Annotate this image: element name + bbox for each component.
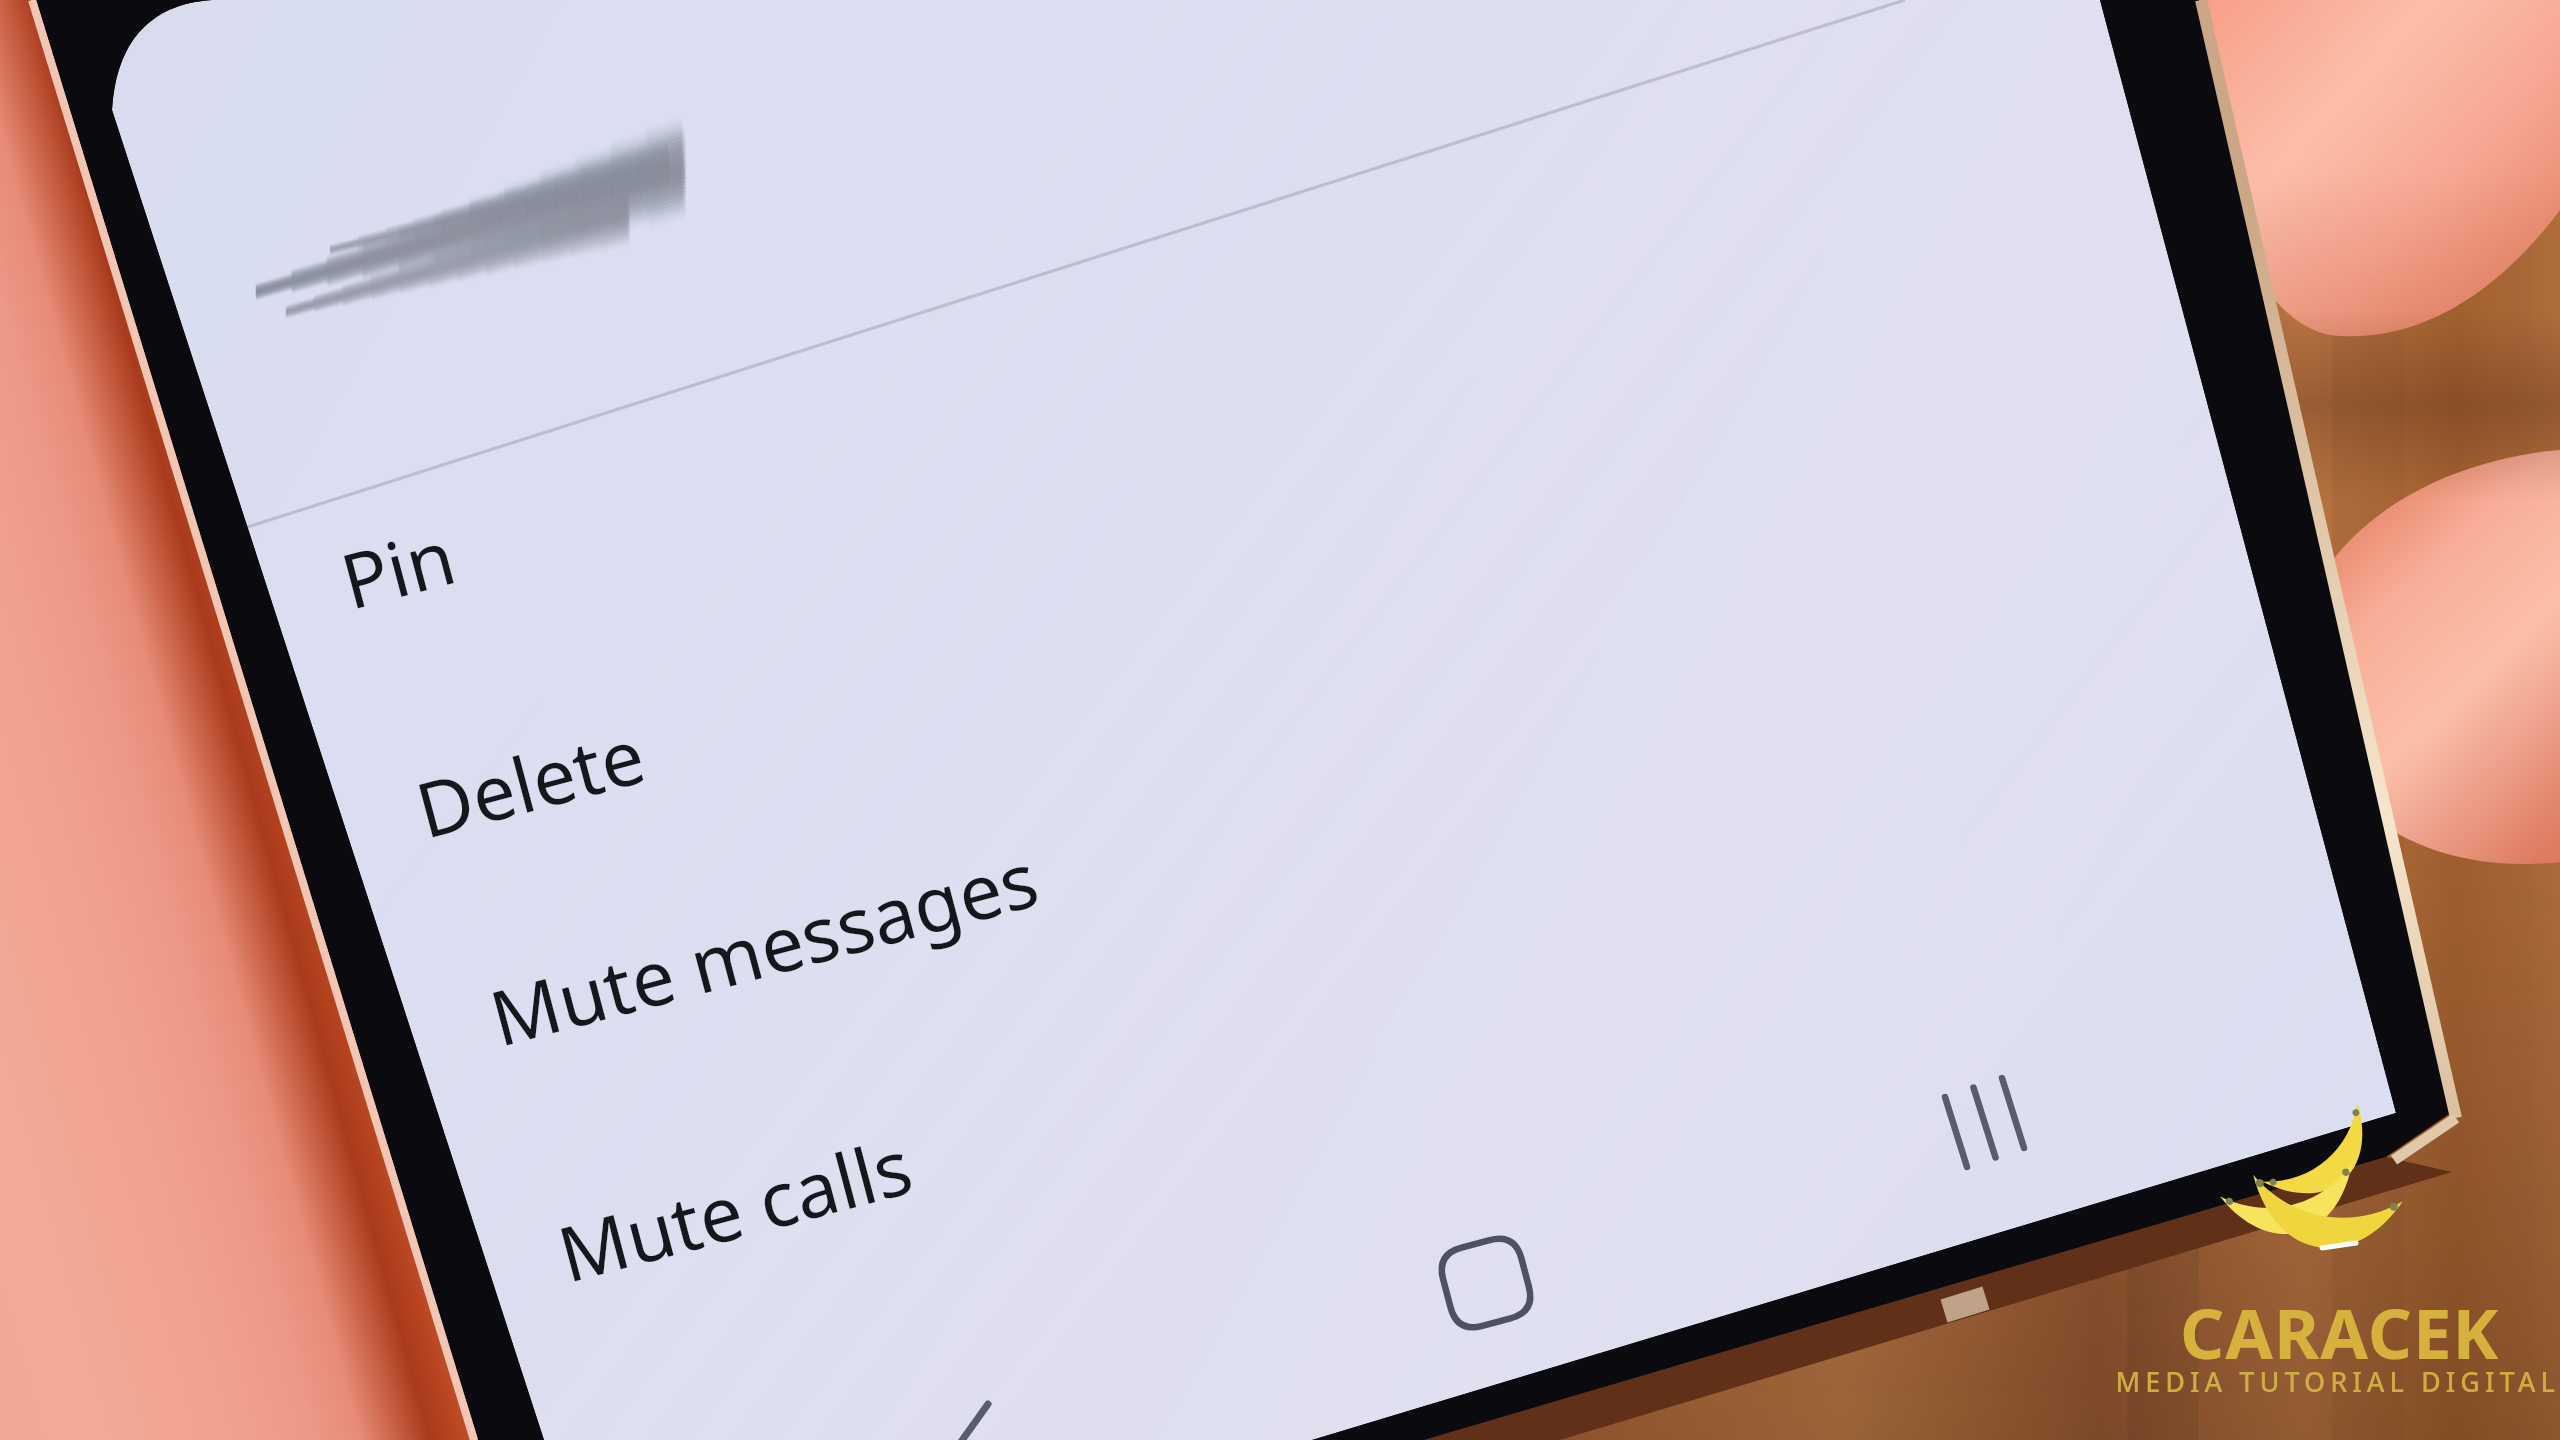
button[interactable] (0, 1130, 2560, 1412)
button[interactable] (0, 0, 2560, 1440)
button[interactable] (0, 470, 2560, 740)
button[interactable] (0, 700, 2560, 964)
button[interactable] (0, 900, 2560, 1176)
